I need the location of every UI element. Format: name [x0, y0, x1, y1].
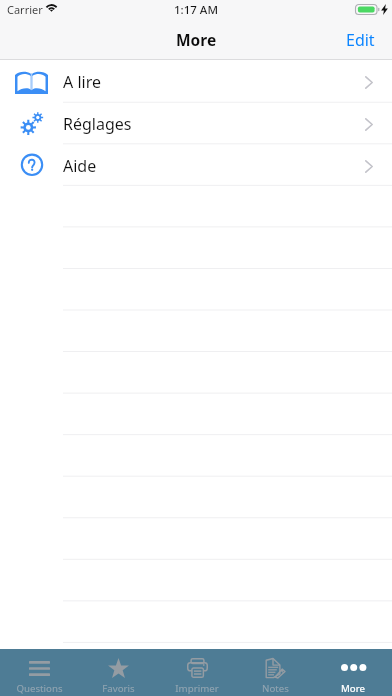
- staticText: 1:17 AM: [174, 2, 218, 18]
- button[interactable]: Questions: [0, 649, 79, 696]
- staticText: A lire: [63, 71, 101, 93]
- staticText: Imprimer: [175, 682, 219, 695]
- staticText: Edit: [346, 29, 375, 51]
- button[interactable]: Edit: [329, 20, 392, 60]
- button[interactable]: Aide: [0, 145, 392, 187]
- staticText: More: [341, 682, 365, 695]
- staticText: Favoris: [102, 682, 135, 695]
- staticText: Questions: [16, 682, 63, 695]
- staticText: Notes: [262, 682, 289, 695]
- staticText: More: [176, 29, 217, 50]
- button[interactable]: Notes: [236, 649, 314, 696]
- button[interactable]: Réglages: [0, 103, 392, 145]
- button[interactable]: More: [314, 649, 392, 696]
- staticText: Aide: [63, 155, 97, 177]
- staticText: Carrier: [7, 2, 43, 17]
- button[interactable]: A lire: [0, 61, 392, 103]
- staticText: Réglages: [63, 113, 132, 135]
- button[interactable]: Imprimer: [158, 649, 236, 696]
- button[interactable]: Favoris: [79, 649, 158, 696]
